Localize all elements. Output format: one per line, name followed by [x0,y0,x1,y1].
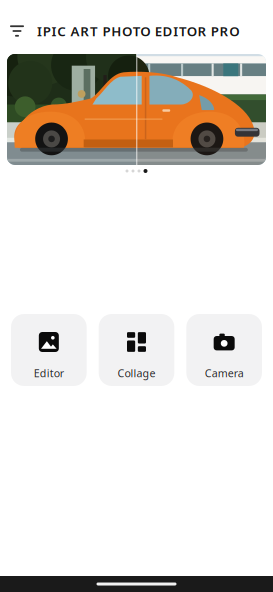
button[interactable]: Camera [186,314,262,386]
staticText: Collage [117,366,155,380]
staticText: Editor [34,366,64,380]
button[interactable]: Collage [99,314,174,386]
staticText: Camera [205,366,244,380]
staticText: IPIC ART PHOTO EDITOR PRO [37,22,239,40]
button[interactable]: Editor [11,314,87,386]
button[interactable]: Filter [4,16,30,46]
